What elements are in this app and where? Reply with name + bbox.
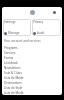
staticText: Privacy — [33, 20, 44, 24]
button[interactable]: Settings — [3, 19, 31, 36]
staticText: Services — [4, 51, 16, 55]
staticText: Programs — [4, 46, 18, 50]
staticText: Destinations — [4, 81, 22, 85]
staticText: Lists de Mode — [4, 91, 24, 95]
button[interactable]: Lists de Mode — [2, 90, 62, 95]
staticText: Events — [4, 56, 14, 60]
staticText: Lookbook — [4, 61, 18, 65]
staticText: Lists & Clubs — [4, 71, 22, 75]
button[interactable]: Programs — [2, 45, 62, 50]
staticText: Manage — [8, 31, 20, 35]
button[interactable]: Account — [30, 10, 35, 15]
staticText: Lists de Mode — [4, 76, 24, 80]
button[interactable]: Lists de Style — [2, 85, 62, 90]
button[interactable]: Services — [2, 50, 62, 55]
staticText: Settings — [4, 20, 16, 24]
button[interactable]: Newsletters — [2, 65, 62, 70]
button[interactable]: Lookbook — [2, 60, 62, 65]
button[interactable]: Lists de Mode — [2, 75, 62, 80]
staticText: Newsletters — [4, 66, 21, 70]
staticText: Lists de Style — [4, 86, 23, 90]
button[interactable]: Destinations — [2, 80, 62, 85]
button[interactable]: Privacy — [32, 19, 61, 36]
button[interactable]: More — [53, 11, 56, 14]
button[interactable]: Events — [2, 55, 62, 60]
staticText: Audit — [37, 31, 45, 35]
button[interactable]: Lists & Clubs — [2, 70, 62, 75]
staticText: Your account and services — [4, 39, 41, 43]
